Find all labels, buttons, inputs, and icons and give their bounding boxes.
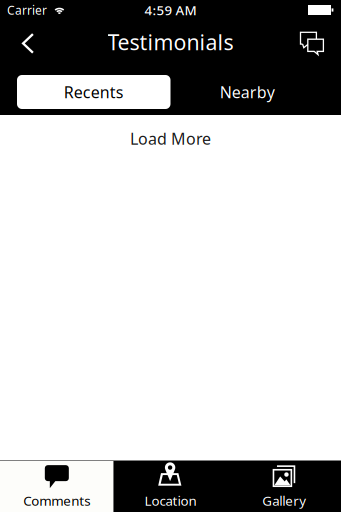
- staticText: Carrier: [7, 2, 47, 18]
- button[interactable]: Location: [114, 461, 227, 512]
- staticText: Comments: [23, 492, 90, 509]
- staticText: Nearby: [220, 81, 275, 103]
- staticText: Gallery: [262, 492, 306, 509]
- button[interactable]: Comments: [0, 461, 114, 512]
- button[interactable]: Recents: [17, 75, 170, 109]
- button[interactable]: Nearby: [170, 75, 324, 109]
- button[interactable]: Back: [8, 20, 48, 64]
- button[interactable]: Messages: [292, 20, 332, 64]
- staticText: Location: [144, 492, 196, 509]
- staticText: Recents: [64, 81, 124, 103]
- staticText: Testimonials: [107, 28, 233, 56]
- button[interactable]: Load More: [0, 128, 341, 149]
- staticText: 4:59 AM: [144, 1, 196, 19]
- staticText: Load More: [130, 128, 211, 149]
- button[interactable]: Gallery: [227, 461, 341, 512]
